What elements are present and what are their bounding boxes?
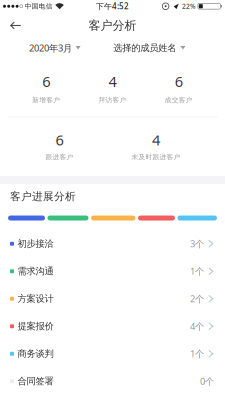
staticText: 成交客户 — [165, 96, 193, 104]
staticText: 6 — [42, 71, 50, 91]
button[interactable]: 商务谈判 — [0, 340, 225, 367]
staticText: 0个 — [200, 375, 214, 387]
staticText: 6 — [175, 71, 183, 91]
staticText: 2020年3月 — [29, 42, 72, 54]
staticText: 中国电信 — [25, 2, 53, 10]
staticText: 未及时跟进客户 — [131, 153, 180, 161]
staticText: 客户分析 — [88, 18, 136, 33]
staticText: 1个 — [190, 348, 204, 360]
staticText: 22% — [182, 2, 196, 11]
staticText: 合同签署 — [17, 375, 53, 387]
button[interactable]: 方案设计 — [0, 285, 225, 312]
button[interactable]: 需求沟通 — [0, 257, 225, 285]
staticText: 拜访客户 — [98, 96, 126, 104]
button[interactable]: 提案报价 — [0, 312, 225, 340]
staticText: 商务谈判 — [17, 348, 53, 359]
staticText: 跟进客户 — [45, 153, 73, 161]
button[interactable]: 返回 — [0, 15, 21, 36]
staticText: 4 — [152, 130, 160, 149]
staticText: 选择的成员姓名 — [113, 42, 176, 54]
button[interactable]: 2020年3月 — [29, 42, 81, 54]
staticText: 提案报价 — [17, 320, 53, 332]
staticText: 新增客户 — [32, 96, 60, 104]
button[interactable]: 初步接洽 — [0, 230, 225, 257]
staticText: 4个 — [190, 320, 204, 332]
staticText: 客户进展分析 — [10, 190, 76, 203]
staticText: 下午4:52 — [96, 1, 129, 11]
staticText: 6 — [55, 130, 63, 149]
staticText: 1个 — [190, 265, 204, 277]
button[interactable]: 选择的成员姓名 — [113, 42, 185, 54]
staticText: 2个 — [190, 293, 204, 305]
button[interactable]: 合同签署 — [0, 367, 225, 395]
staticText: 4 — [108, 71, 116, 91]
staticText: 初步接洽 — [17, 238, 53, 249]
staticText: 需求沟通 — [17, 265, 53, 277]
staticText: 方案设计 — [17, 293, 53, 304]
staticText: 3个 — [190, 238, 204, 250]
